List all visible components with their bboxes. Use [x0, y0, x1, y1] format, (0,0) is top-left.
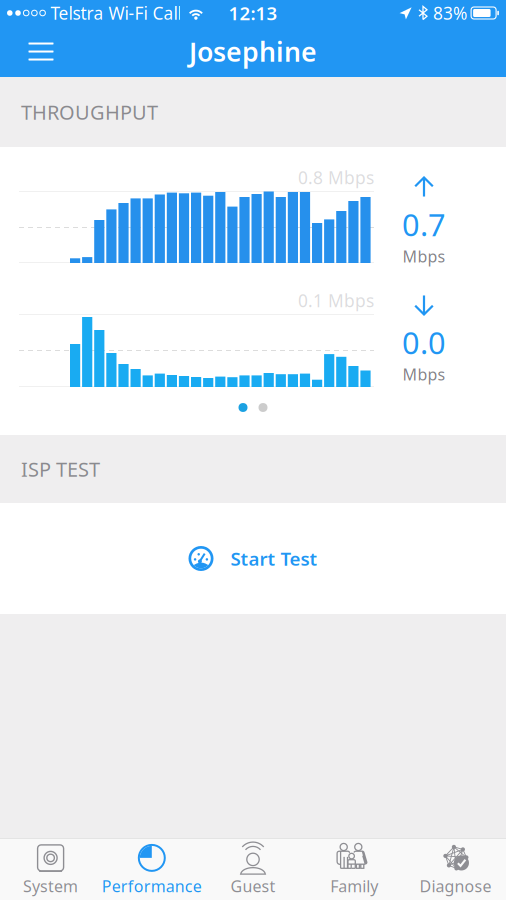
staticText: Performance [102, 875, 202, 897]
staticText: 12:13 [228, 1, 277, 25]
staticText: ISP TEST [21, 456, 100, 482]
staticText: Diagnose [419, 875, 491, 897]
button[interactable]: System [0, 838, 101, 900]
staticText: Mbps [402, 246, 445, 267]
button[interactable]: Family [304, 838, 405, 900]
staticText: THROUGHPUT [21, 99, 158, 125]
staticText: Family [330, 875, 378, 897]
staticText: Mbps [402, 364, 445, 385]
button[interactable]: Diagnose [405, 838, 506, 900]
staticText: 0.1 Mbps [298, 289, 374, 312]
staticText: 0.8 Mbps [298, 166, 374, 189]
staticText: Guest [230, 875, 275, 897]
staticText: 0.0 [402, 322, 446, 363]
staticText: Telstra Wi-Fi Call [50, 1, 181, 24]
staticText: 83% [433, 1, 467, 24]
button[interactable]: Performance [101, 838, 202, 900]
button[interactable]: Guest [202, 838, 304, 900]
staticText: Start Test [230, 546, 317, 571]
button[interactable]: Menu [14, 26, 68, 77]
staticText: 0.7 [402, 204, 446, 245]
button[interactable]: Start Test [0, 503, 506, 614]
staticText: System [23, 875, 78, 897]
staticText: Josephine [189, 34, 317, 69]
